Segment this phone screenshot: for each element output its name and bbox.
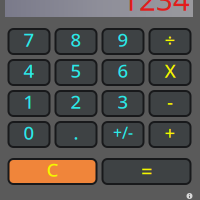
staticText: = (141, 157, 152, 184)
staticText: 1 (23, 89, 34, 114)
button[interactable]: X (149, 60, 190, 85)
staticText: +/- (113, 122, 133, 143)
staticText: 7 (23, 27, 34, 52)
button[interactable]: 3 (102, 91, 143, 116)
staticText: 1234 (122, 0, 190, 19)
staticText: ÷ (164, 27, 175, 52)
button[interactable]: ÷ (149, 29, 190, 54)
button[interactable]: 7 (8, 29, 49, 54)
staticText: 5 (70, 58, 81, 83)
button[interactable]: + (149, 122, 190, 147)
staticText: 0 (23, 120, 34, 145)
button[interactable]: 4 (8, 60, 49, 85)
button[interactable]: 9 (102, 29, 143, 54)
button[interactable]: Info (183, 189, 196, 200)
staticText: 8 (70, 27, 81, 52)
staticText: + (164, 120, 175, 145)
staticText: C (46, 157, 58, 182)
staticText: 3 (117, 89, 128, 114)
button[interactable]: = (102, 159, 190, 184)
button[interactable]: C (8, 159, 96, 184)
button[interactable]: . (55, 122, 96, 147)
button[interactable]: 2 (55, 91, 96, 116)
button[interactable]: 5 (55, 60, 96, 85)
button[interactable]: - (149, 91, 190, 116)
staticText: 6 (117, 58, 128, 83)
staticText: 4 (23, 58, 34, 83)
staticText: 9 (117, 27, 128, 52)
staticText: . (73, 120, 78, 145)
button[interactable]: 6 (102, 60, 143, 85)
button[interactable]: 0 (8, 122, 49, 147)
button[interactable]: 1 (8, 91, 49, 116)
button[interactable]: +/- (102, 122, 143, 147)
staticText: 2 (70, 89, 81, 114)
staticText: X (164, 58, 175, 83)
button[interactable]: 8 (55, 29, 96, 54)
staticText: - (167, 89, 173, 114)
